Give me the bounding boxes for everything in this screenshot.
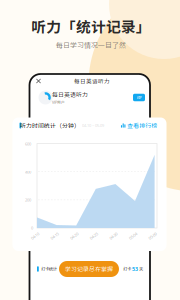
staticText: 0 (31, 225, 33, 231)
staticText: 04-25 (89, 233, 98, 239)
staticText: 600 (25, 141, 31, 147)
staticText: 听力「统计记录」 (31, 15, 151, 37)
staticText: 05-09 (148, 233, 157, 239)
staticText: 04-20 (70, 233, 79, 239)
staticText: 学习记录尽在掌握 (65, 265, 113, 273)
staticText: 05-04 (128, 233, 137, 239)
staticText: 打卡统计 (41, 266, 57, 272)
staticText: VIP (136, 95, 141, 100)
staticText: 04-10 (30, 233, 39, 239)
staticText: 53 (132, 265, 138, 273)
staticText: 每日学习情况一目了然 (56, 40, 126, 50)
button[interactable]: 查看排行榜 (121, 121, 157, 130)
button[interactable]: 关闭 (33, 76, 44, 86)
staticText: 听力时间统计（分钟） (20, 121, 80, 130)
button[interactable]: 学习记录尽在掌握 (59, 261, 119, 277)
staticText: 每日英语听力 (52, 90, 88, 99)
staticText: 04-30 (109, 233, 118, 239)
staticText: 04-10 ~ 05-09 (82, 123, 104, 128)
button[interactable]: VIP (133, 94, 145, 101)
staticText: 200 (25, 197, 31, 203)
staticText: 打卡 (123, 266, 132, 272)
staticText: VIP用户 (52, 99, 65, 105)
staticText: 400 (25, 169, 31, 175)
staticText: 天 (138, 266, 143, 272)
staticText: 04-15 (50, 233, 59, 239)
staticText: 每日英语听力 (74, 77, 110, 85)
staticText: 查看排行榜 (127, 121, 157, 130)
